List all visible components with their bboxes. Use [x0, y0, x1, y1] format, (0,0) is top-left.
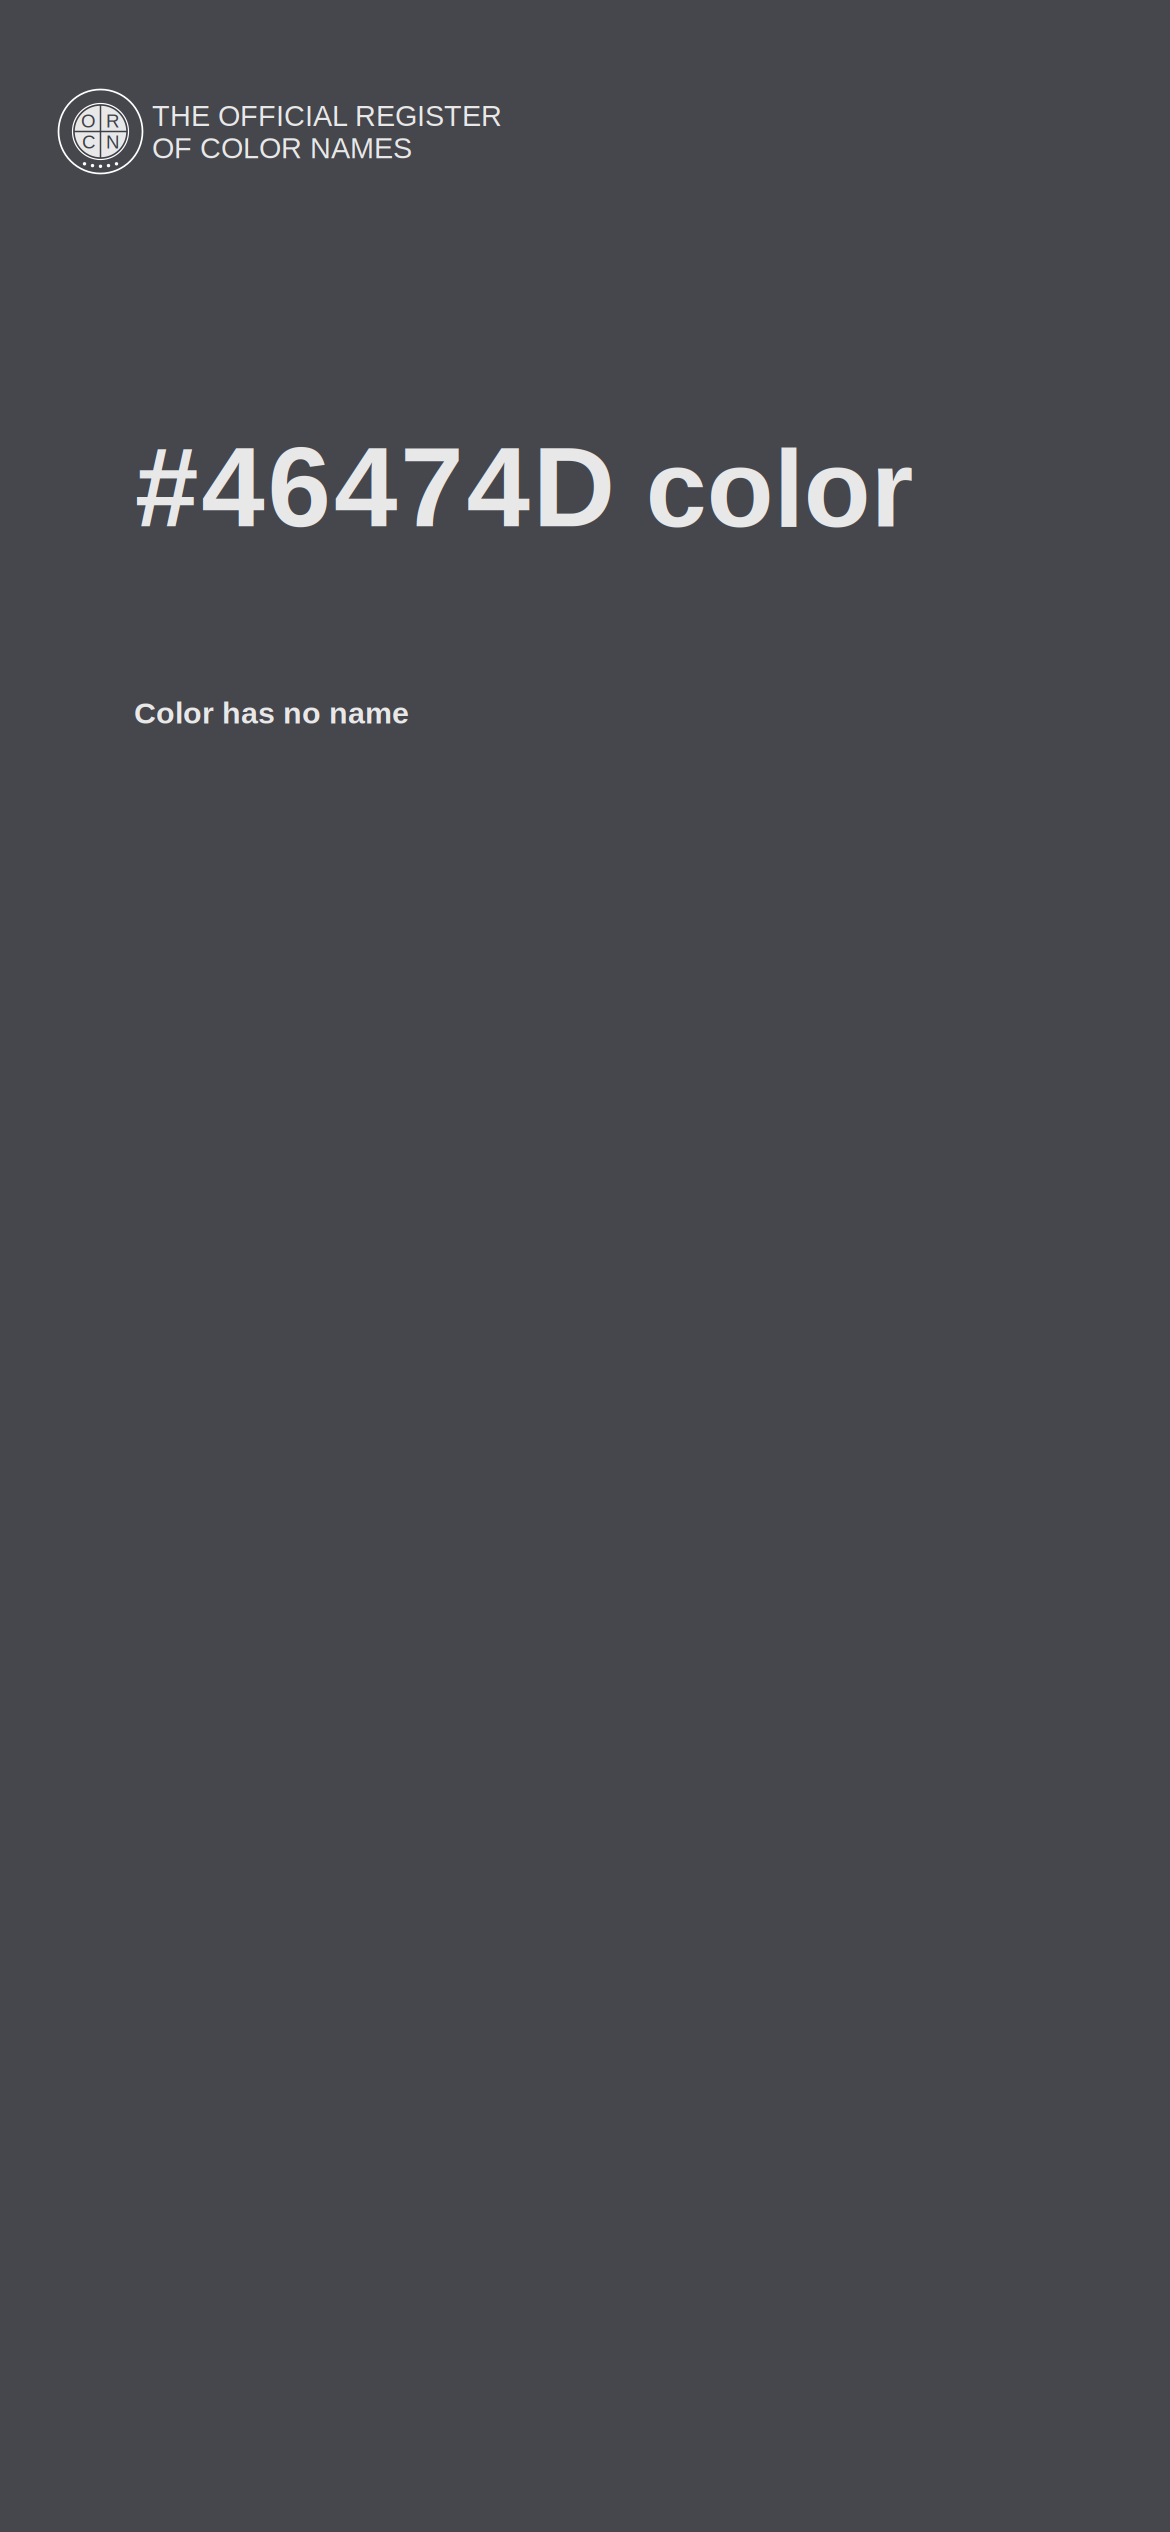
staticText: N [106, 132, 119, 152]
button[interactable]: O [58, 89, 508, 179]
staticText: OF COLOR NAMES [152, 132, 412, 164]
staticText: R [106, 111, 119, 131]
staticText: THE OFFICIAL REGISTER [152, 100, 502, 132]
staticText: Color has no name [134, 696, 409, 730]
staticText: color [646, 428, 914, 550]
staticText: C [82, 132, 95, 152]
staticText: O [81, 111, 96, 131]
staticText: #46474D [135, 423, 615, 550]
